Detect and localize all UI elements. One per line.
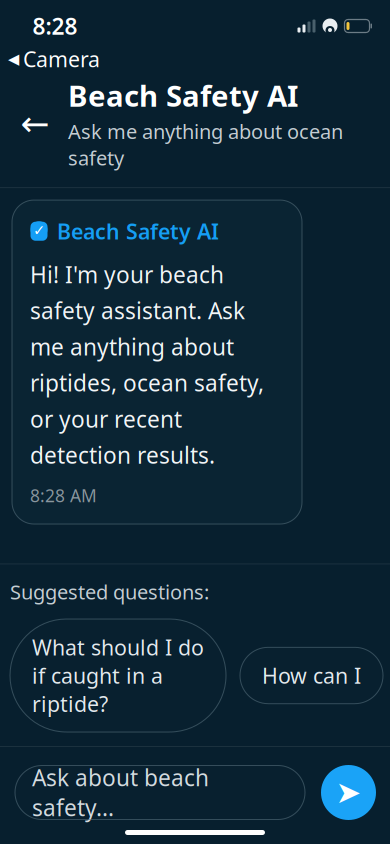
staticText: Ask me anything about ocean safety [68,118,343,171]
staticText: What should I do if caught in a riptide? [32,633,204,718]
button[interactable]: Send [321,765,376,820]
staticText: Camera [23,45,100,73]
staticText: Hi! I'm your beach safety assistant. Ask… [30,259,264,470]
staticText: Suggested questions: [10,578,209,605]
staticText: ← [20,104,49,143]
staticText: ◀ [8,51,19,67]
staticText: 8:28 [32,11,77,41]
staticText: Beach Safety AI [68,76,298,115]
button[interactable]: Back [16,104,54,142]
button[interactable]: How can I [240,647,383,704]
staticText: Ask about beach safety... [32,762,209,823]
staticText: ➤ [335,775,361,810]
staticText: 8:28 AM [30,484,97,507]
button[interactable]: Ask about beach safety... [15,765,305,819]
staticText: Beach Safety AI [57,217,219,245]
button[interactable]: ◀ [0,45,100,73]
staticText: ✓ [33,222,45,238]
staticText: How can I [262,661,361,690]
button[interactable]: What should I do if caught in a riptide? [10,619,226,732]
